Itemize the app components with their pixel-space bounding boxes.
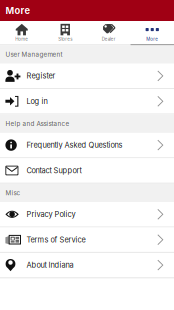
staticText: Register — [26, 71, 55, 80]
button[interactable]: Register — [0, 64, 174, 89]
button[interactable]: About Indiana — [0, 253, 174, 278]
staticText: More — [146, 37, 158, 42]
button[interactable]: More — [130, 21, 174, 44]
button[interactable]: Contact Support — [0, 158, 174, 184]
button[interactable]: Privacy Policy — [0, 202, 174, 227]
staticText: User Management — [5, 51, 62, 58]
button[interactable]: Log in — [0, 89, 174, 114]
button[interactable]: Dealer — [87, 21, 130, 44]
staticText: Help and Assistance — [5, 120, 69, 127]
staticText: Log in — [26, 97, 47, 106]
button[interactable]: Stores — [43, 21, 87, 44]
button[interactable]: Frequently Asked Questions — [0, 133, 174, 158]
staticText: Frequently Asked Questions — [26, 141, 122, 150]
staticText: Terms of Service — [26, 235, 85, 244]
button[interactable]: Home — [0, 21, 43, 44]
button[interactable]: Terms of Service — [0, 227, 174, 253]
staticText: About Indiana — [26, 261, 73, 270]
staticText: Misc — [5, 189, 20, 197]
staticText: More — [5, 5, 30, 16]
staticText: Home — [15, 37, 28, 42]
staticText: Contact Support — [26, 166, 81, 175]
staticText: Privacy Policy — [26, 210, 75, 219]
staticText: Stores — [58, 37, 72, 42]
staticText: Dealer — [102, 36, 116, 42]
